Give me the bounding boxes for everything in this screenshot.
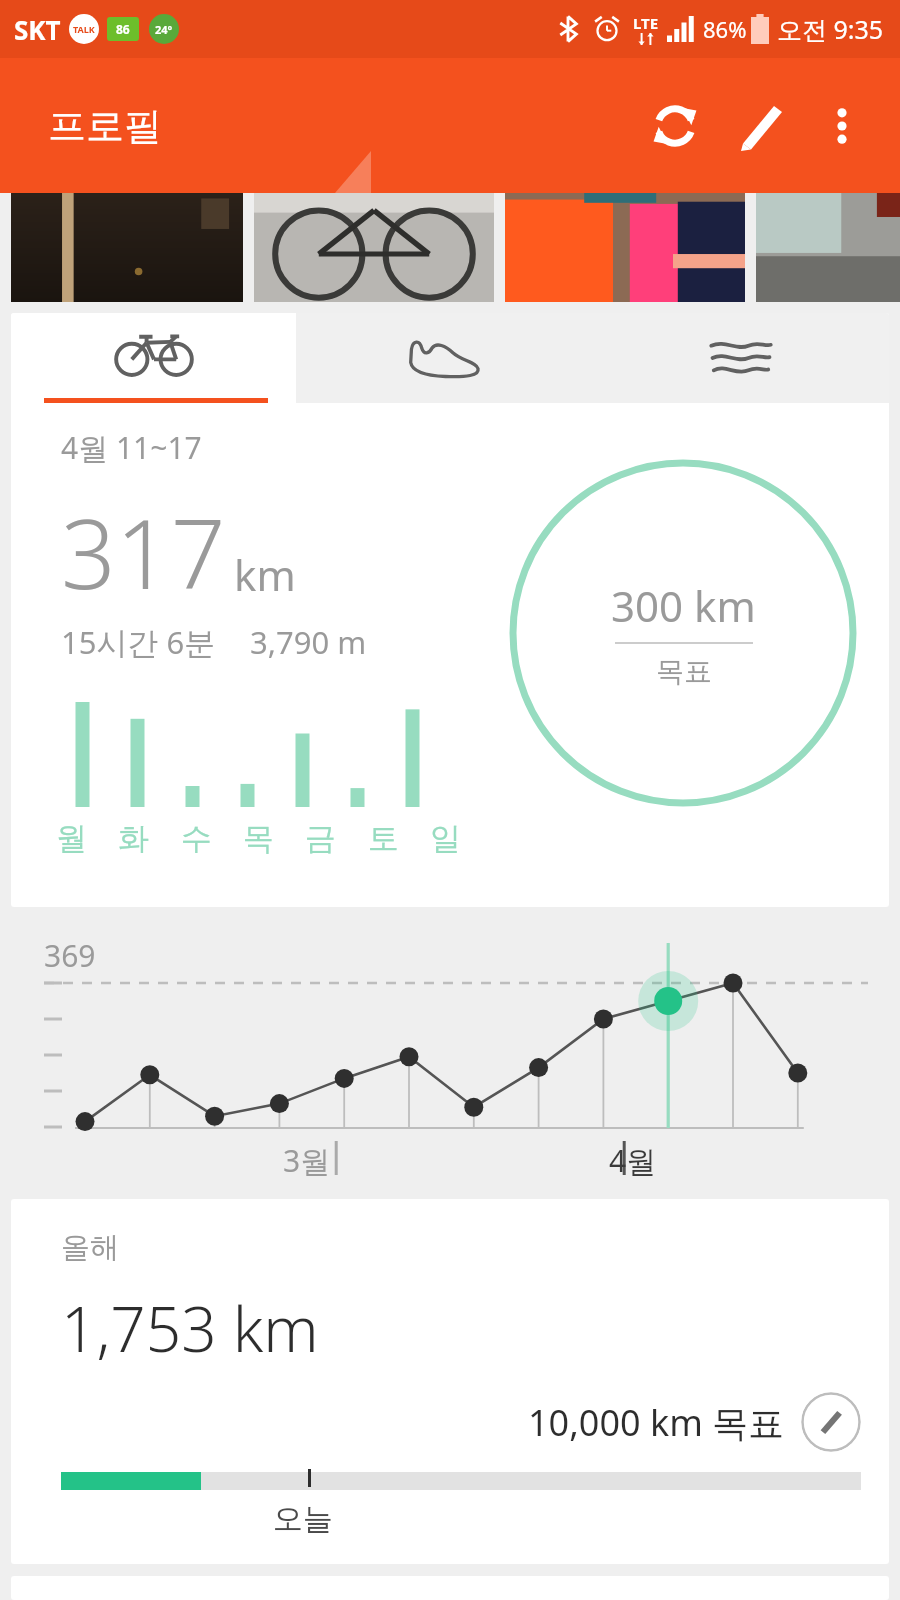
staticText: TALK xyxy=(73,23,95,35)
staticText: 10,000 km 목표 xyxy=(528,1398,785,1447)
button[interactable]: Cycling xyxy=(11,313,296,403)
button[interactable]: Photo 3 xyxy=(505,193,745,302)
button[interactable]: Running xyxy=(296,313,592,403)
staticText: 300 km xyxy=(611,577,756,634)
staticText: 369 xyxy=(44,935,96,976)
staticText: 4월 11~17 xyxy=(61,427,202,468)
staticText: 317 xyxy=(61,486,226,617)
staticText: 1,753 km xyxy=(61,1286,319,1370)
staticText: 3,790 m xyxy=(250,621,367,663)
staticText: 올해 xyxy=(61,1229,119,1266)
staticText: 3월 xyxy=(283,1140,331,1181)
button[interactable]: Photo 1 xyxy=(11,193,243,302)
button[interactable]: Refresh xyxy=(632,83,718,169)
button[interactable]: More options xyxy=(804,88,880,164)
button[interactable]: Edit goal xyxy=(801,1392,861,1452)
button[interactable]: Photo 4 xyxy=(756,193,900,302)
button[interactable]: Swimming xyxy=(592,313,889,403)
staticText: 수 xyxy=(181,819,212,858)
staticText: 화 xyxy=(118,819,149,858)
staticText: 86% xyxy=(703,14,747,44)
staticText: km xyxy=(234,546,296,603)
staticText: 4월 xyxy=(609,1140,657,1181)
staticText: 오늘 xyxy=(273,1500,333,1538)
button[interactable]: Edit xyxy=(718,83,804,169)
button[interactable]: Photo 2 xyxy=(254,193,494,302)
staticText: LTE xyxy=(633,13,659,33)
staticText: 일 xyxy=(430,819,461,858)
staticText: 월 xyxy=(56,819,87,858)
staticText: SKT xyxy=(14,12,61,47)
staticText: 목표 xyxy=(656,654,712,689)
staticText: 토 xyxy=(368,819,399,858)
staticText: 15시간 6분 xyxy=(61,621,216,663)
staticText: 오전 9:35 xyxy=(777,12,884,46)
staticText: 목 xyxy=(243,819,274,858)
staticText: 86 xyxy=(116,21,130,37)
staticText: 프로필 xyxy=(48,102,162,150)
staticText: 24° xyxy=(155,22,173,37)
staticText: 금 xyxy=(305,819,336,858)
